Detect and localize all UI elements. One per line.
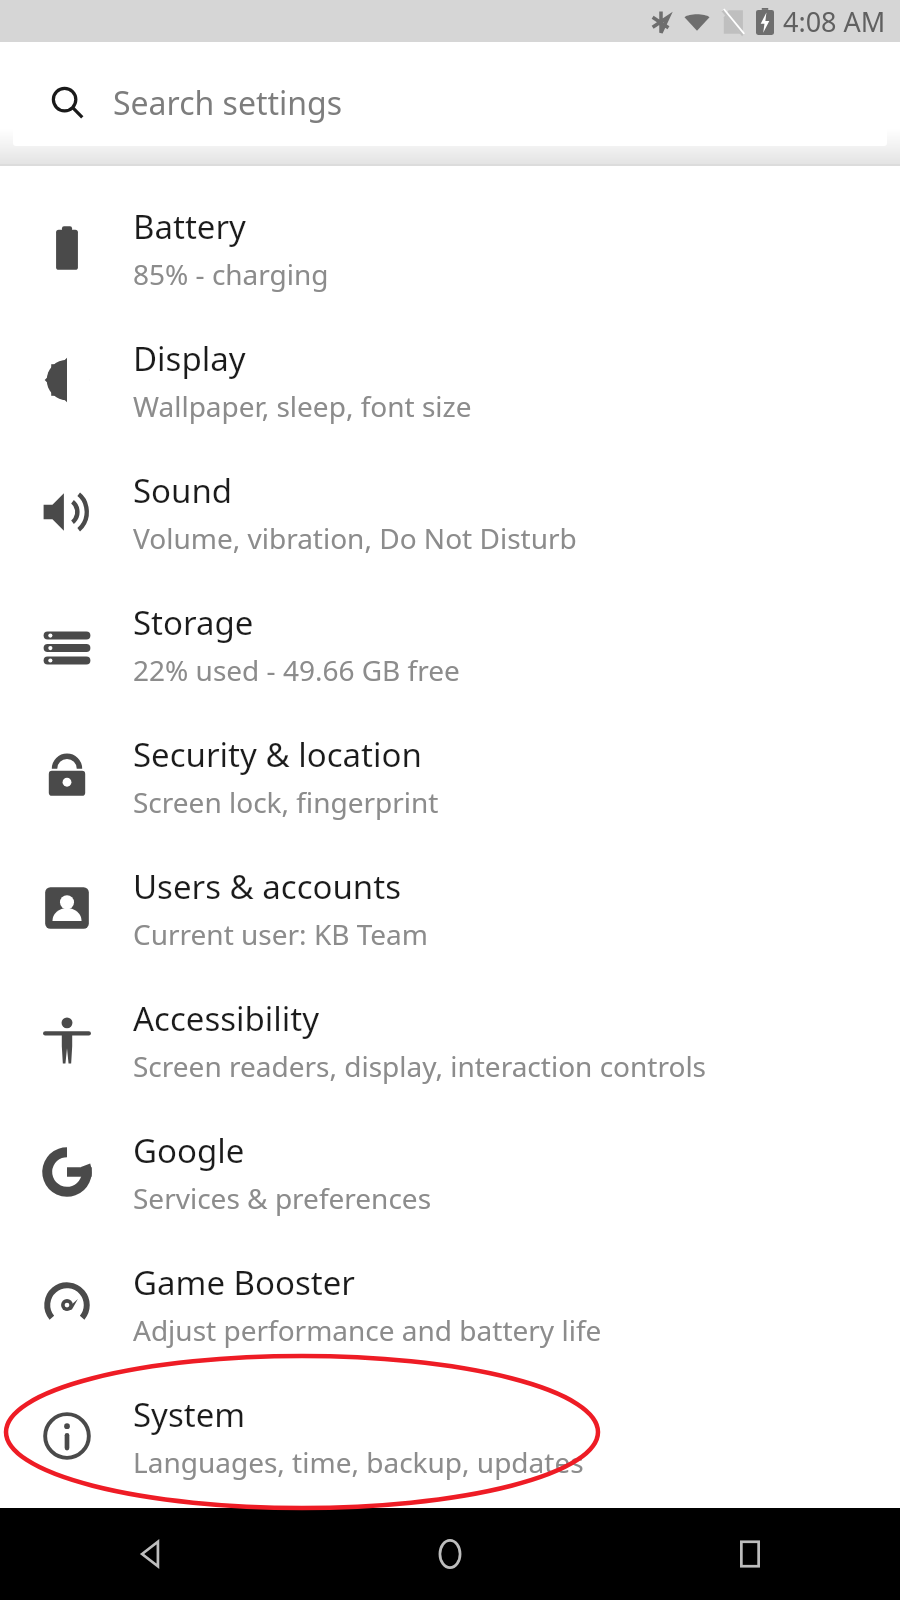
staticText: Users & accounts (133, 864, 401, 909)
staticText: Wallpaper, sleep, font size (133, 387, 472, 425)
button[interactable]: System (0, 1370, 900, 1502)
staticText: Current user: KB Team (133, 915, 429, 953)
button[interactable]: Recent apps (600, 1508, 900, 1600)
button[interactable]: Sound (0, 446, 900, 578)
button[interactable]: Users (0, 842, 900, 974)
button[interactable]: Display (0, 314, 900, 446)
staticText: Game Booster (133, 1260, 355, 1305)
staticText: Screen lock, fingerprint (133, 783, 439, 821)
staticText: Display (133, 336, 246, 381)
button[interactable]: Back (0, 1508, 300, 1600)
other: Security (41, 750, 93, 802)
button[interactable]: Game Booster (0, 1238, 900, 1370)
staticText: 4:08 AM (783, 3, 886, 40)
other: Display (41, 354, 93, 406)
staticText: Adjust performance and battery life (133, 1311, 602, 1349)
staticText: Screen readers, display, interaction con… (133, 1047, 707, 1085)
staticText: Google (133, 1128, 245, 1173)
button[interactable]: Accessibility (0, 974, 900, 1106)
button[interactable]: Google (0, 1106, 900, 1238)
staticText: Accessibility (133, 996, 320, 1041)
button[interactable]: Search (13, 59, 887, 146)
staticText: Services & preferences (133, 1179, 432, 1217)
other: Game Booster (41, 1278, 93, 1330)
staticText: Sound (133, 468, 233, 513)
other: Sound (41, 486, 93, 538)
button[interactable]: Battery (0, 182, 900, 314)
staticText: 22% used - 49.66 GB free (133, 651, 460, 689)
button[interactable]: Security (0, 710, 900, 842)
staticText: Security & location (133, 732, 422, 777)
other: Google (41, 1146, 93, 1198)
button[interactable]: Storage (0, 578, 900, 710)
other: Battery (41, 222, 93, 274)
button[interactable]: Home (300, 1508, 600, 1600)
staticText: Battery (133, 204, 246, 249)
staticText: 85% - charging (133, 255, 329, 293)
other: Storage (41, 618, 93, 670)
staticText: System (133, 1392, 246, 1437)
other: Accessibility (41, 1014, 93, 1066)
other: Search (51, 86, 85, 120)
staticText: Search settings (113, 81, 343, 125)
staticText: Volume, vibration, Do Not Disturb (133, 519, 577, 557)
other: System (41, 1410, 93, 1462)
staticText: Storage (133, 600, 254, 645)
staticText: Languages, time, backup, updates (133, 1443, 584, 1481)
other: Users (41, 882, 93, 934)
